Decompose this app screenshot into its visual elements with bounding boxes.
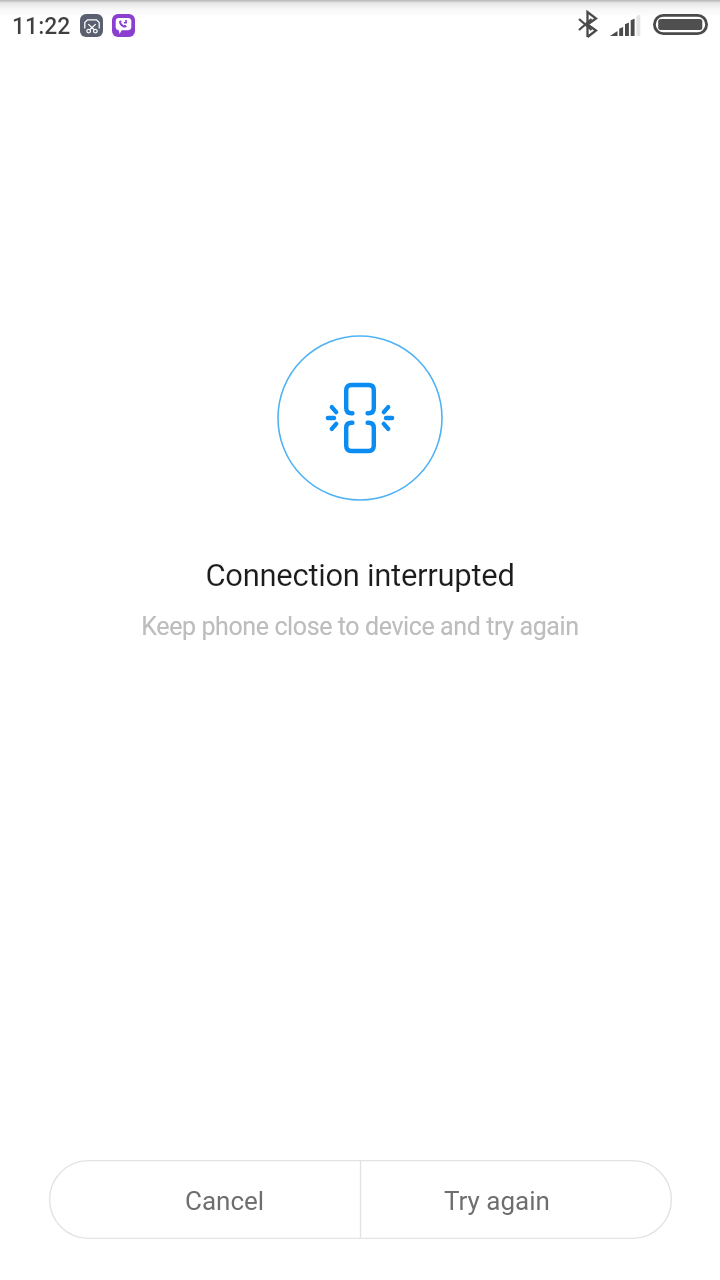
button[interactable]: Cancel bbox=[49, 1160, 360, 1239]
staticText: Cancel bbox=[185, 1186, 265, 1216]
staticText: Try again bbox=[444, 1186, 550, 1216]
other: Connection interrupted illustration bbox=[277, 335, 443, 501]
staticText: 11:22 bbox=[12, 13, 71, 40]
button[interactable]: Try again bbox=[360, 1160, 672, 1239]
staticText: Connection interrupted bbox=[0, 557, 720, 593]
staticText: Keep phone close to device and try again bbox=[0, 612, 720, 641]
